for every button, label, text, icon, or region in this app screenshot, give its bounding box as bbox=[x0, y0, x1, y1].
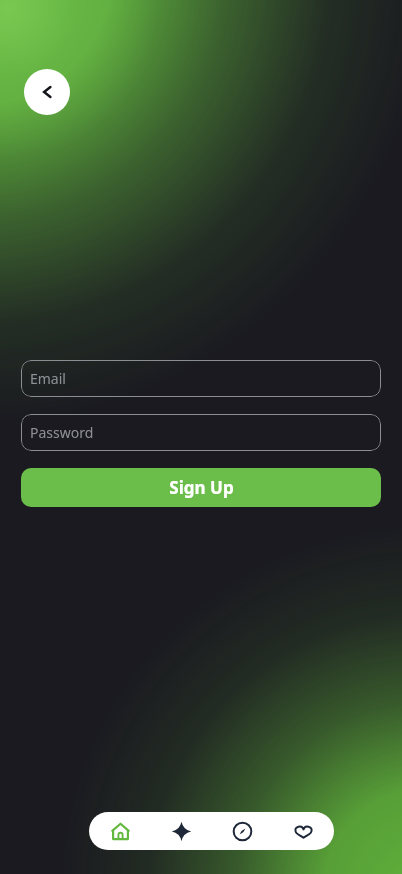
button[interactable]: Back bbox=[24, 69, 70, 115]
staticText: Password bbox=[30, 423, 94, 442]
button[interactable]: Home bbox=[89, 812, 151, 850]
button[interactable]: Favorites bbox=[273, 812, 334, 850]
button[interactable]: Email bbox=[21, 360, 381, 397]
button[interactable]: Password bbox=[21, 414, 381, 451]
button[interactable]: Explore bbox=[212, 812, 273, 850]
button[interactable]: Discover bbox=[151, 812, 212, 850]
staticText: Email bbox=[30, 369, 66, 388]
staticText: Sign Up bbox=[169, 476, 234, 499]
button[interactable]: Sign Up bbox=[21, 468, 381, 507]
